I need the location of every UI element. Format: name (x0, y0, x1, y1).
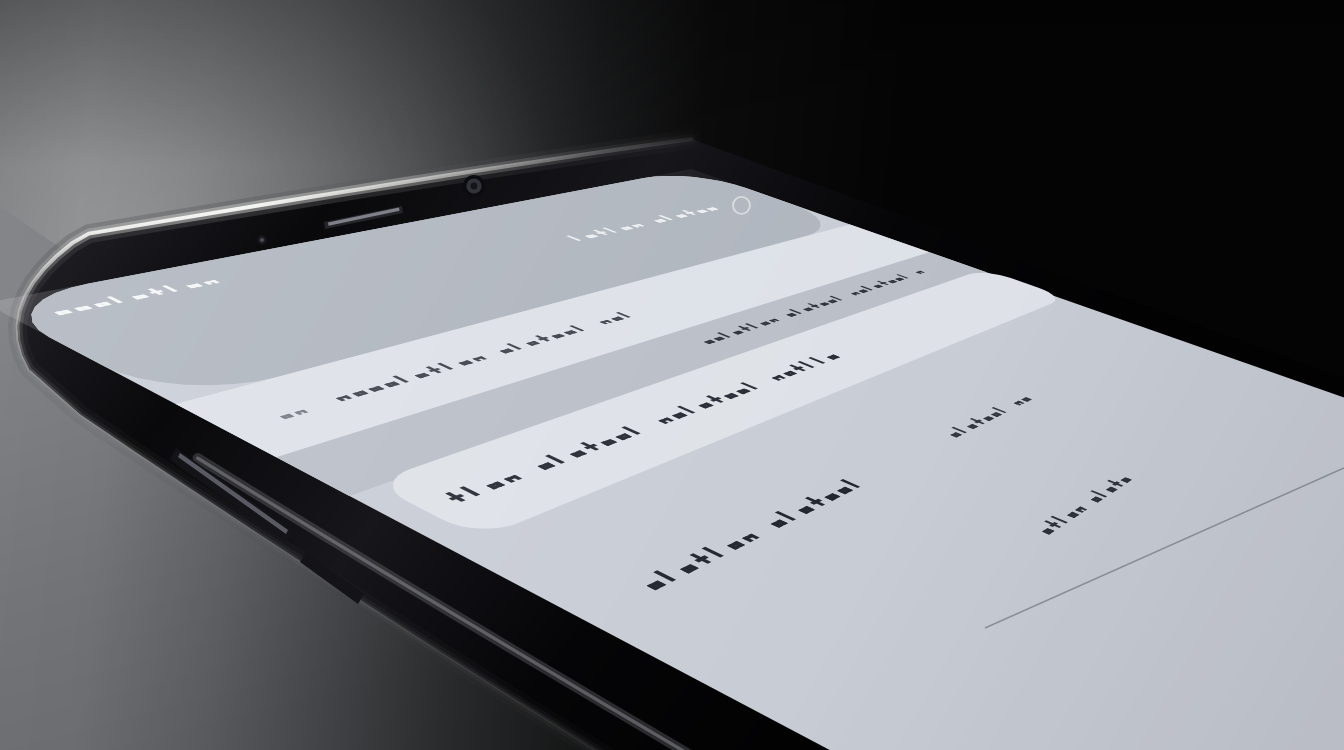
button[interactable]: Smartphone app screen (0, 0, 1344, 750)
